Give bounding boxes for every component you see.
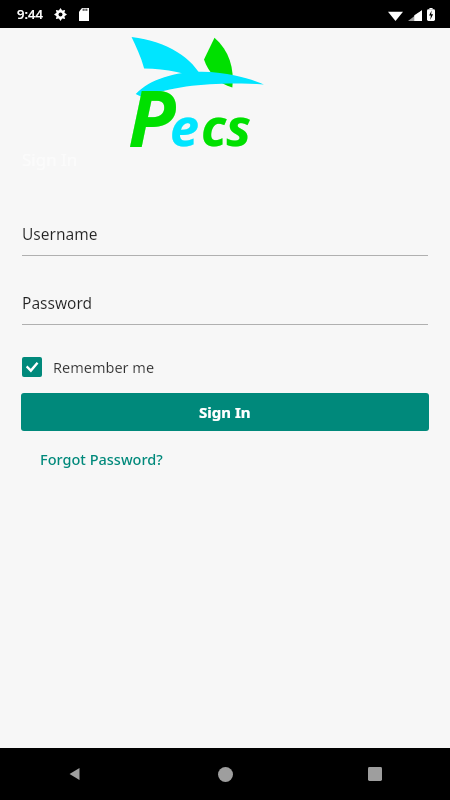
button[interactable]: Forgot Password? — [40, 449, 163, 469]
staticText: Password — [22, 292, 93, 313]
button[interactable]: Recent apps — [300, 748, 450, 800]
button[interactable]: Back — [0, 748, 150, 800]
staticText: Username — [22, 223, 98, 244]
staticText: P — [128, 64, 176, 158]
staticText: 9:44 — [17, 5, 43, 23]
staticText: Remember me — [53, 357, 155, 377]
button[interactable]: Sign In — [21, 393, 429, 431]
button[interactable]: Home — [150, 748, 300, 800]
staticText: e — [170, 90, 199, 161]
staticText: Forgot Password? — [40, 449, 163, 469]
button[interactable]: Remember me — [22, 357, 155, 377]
staticText: Sign In — [199, 402, 251, 422]
staticText: cs — [201, 90, 251, 161]
